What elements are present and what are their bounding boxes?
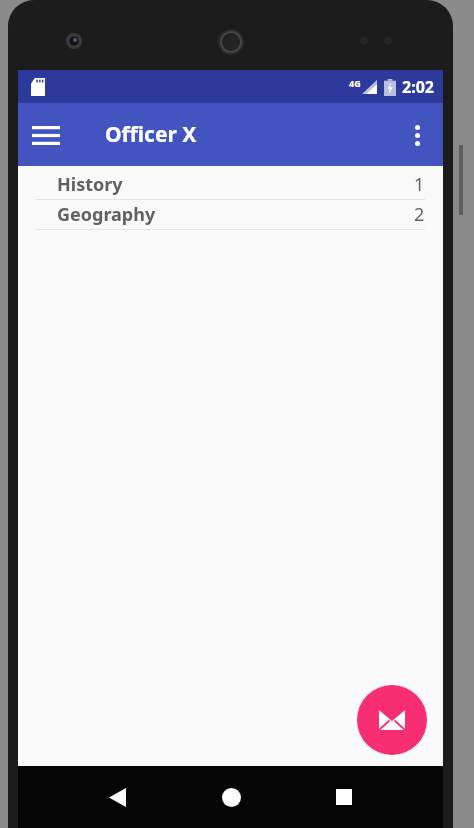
- staticText: 2:02: [402, 76, 434, 98]
- staticText: 2: [414, 202, 425, 227]
- staticText: Officer X: [105, 120, 197, 149]
- staticText: History: [57, 172, 123, 197]
- staticText: 1: [414, 172, 425, 197]
- button[interactable]: Geography: [18, 200, 443, 230]
- button[interactable]: Back: [94, 774, 140, 820]
- button[interactable]: Recent apps: [321, 774, 367, 820]
- button[interactable]: Compose mail: [357, 685, 427, 755]
- button[interactable]: History: [18, 170, 443, 200]
- staticText: Geography: [57, 202, 156, 227]
- staticText: 4G: [349, 77, 361, 89]
- button[interactable]: Open navigation drawer: [22, 111, 70, 159]
- button[interactable]: More options: [394, 112, 440, 158]
- button[interactable]: Home: [208, 774, 254, 820]
